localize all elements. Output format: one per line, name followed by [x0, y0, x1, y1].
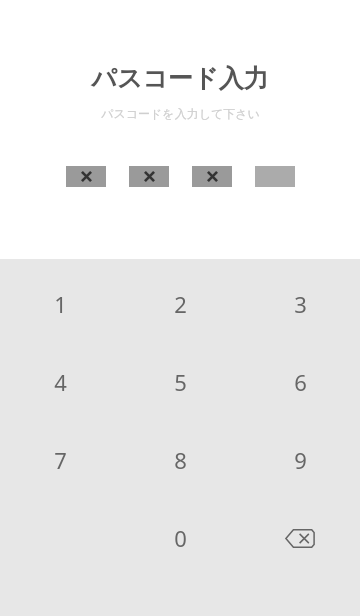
- button[interactable]: 2: [141, 265, 219, 343]
- staticText: 4: [54, 367, 67, 397]
- staticText: 2: [174, 289, 187, 319]
- staticText: 8: [174, 445, 187, 475]
- button[interactable]: 6: [261, 343, 339, 421]
- staticText: パスコードを入力して下さい: [101, 106, 260, 121]
- staticText: 1: [54, 289, 67, 319]
- button[interactable]: 8: [141, 421, 219, 499]
- button[interactable]: 4: [21, 343, 99, 421]
- staticText: 3: [294, 289, 307, 319]
- button[interactable]: Delete: [261, 499, 339, 577]
- staticText: 0: [174, 523, 187, 553]
- button[interactable]: 5: [141, 343, 219, 421]
- button[interactable]: 7: [21, 421, 99, 499]
- staticText: 9: [294, 445, 307, 475]
- button[interactable]: 9: [261, 421, 339, 499]
- button[interactable]: 1: [21, 265, 99, 343]
- button[interactable]: 0: [141, 499, 219, 577]
- button[interactable]: 3: [261, 265, 339, 343]
- staticText: 5: [174, 367, 187, 397]
- staticText: パスコード入力: [91, 63, 269, 94]
- staticText: 7: [54, 445, 67, 475]
- staticText: 6: [294, 367, 307, 397]
